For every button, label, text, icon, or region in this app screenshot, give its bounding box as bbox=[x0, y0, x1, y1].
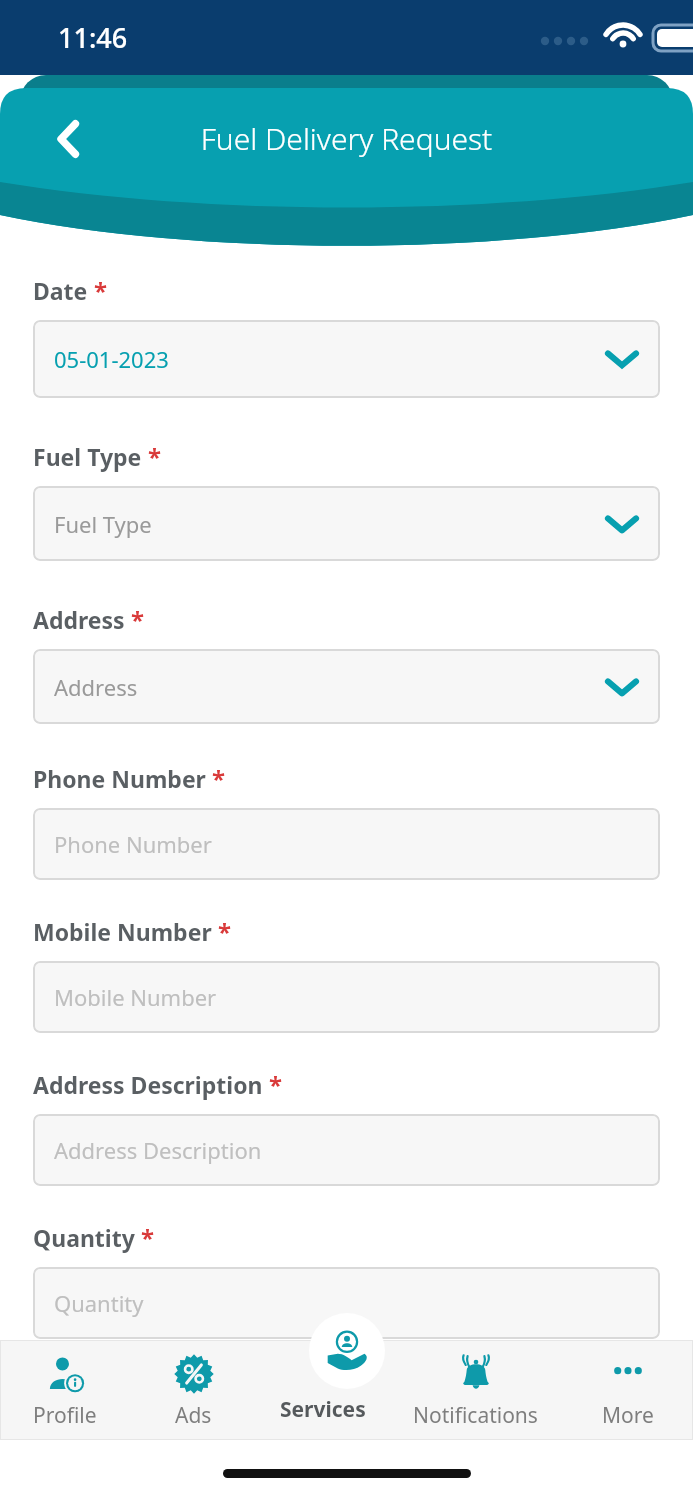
staticText: Ads bbox=[175, 1401, 212, 1430]
button[interactable]: Services bbox=[309, 1313, 385, 1389]
button[interactable]: Fuel Type bbox=[33, 486, 660, 561]
button[interactable]: Phone Number bbox=[33, 808, 660, 880]
button[interactable]: Address Description bbox=[33, 1114, 660, 1186]
staticText: Date bbox=[33, 275, 88, 306]
staticText: Profile bbox=[33, 1401, 97, 1430]
staticText: * bbox=[148, 440, 162, 473]
staticText: Address Description bbox=[33, 1069, 263, 1100]
staticText: Phone Number bbox=[33, 763, 206, 794]
staticText: Fuel Delivery Request bbox=[0, 118, 693, 159]
button[interactable]: Notifications bbox=[388, 1340, 563, 1440]
staticText: Address bbox=[54, 672, 606, 702]
staticText: Address bbox=[33, 604, 125, 635]
staticText: Services bbox=[280, 1395, 366, 1424]
staticText: More bbox=[602, 1401, 654, 1430]
staticText: Phone Number bbox=[54, 829, 638, 859]
button[interactable]: 05-01-2023 bbox=[33, 320, 660, 398]
button[interactable]: Mobile Number bbox=[33, 961, 660, 1033]
staticText: * bbox=[218, 915, 232, 948]
staticText: Fuel Type bbox=[54, 509, 606, 539]
staticText: * bbox=[94, 274, 108, 307]
button[interactable]: Ads bbox=[129, 1340, 258, 1440]
staticText: * bbox=[141, 1221, 155, 1254]
staticText: * bbox=[269, 1068, 283, 1101]
staticText: Address Description bbox=[54, 1135, 638, 1165]
staticText: Mobile Number bbox=[33, 916, 212, 947]
staticText: Fuel Type bbox=[33, 441, 142, 472]
button[interactable]: Quantity bbox=[33, 1267, 660, 1339]
button[interactable]: Back bbox=[38, 108, 100, 170]
staticText: 05-01-2023 bbox=[54, 344, 606, 374]
staticText: * bbox=[131, 603, 145, 636]
button[interactable]: Services bbox=[258, 1340, 388, 1440]
staticText: Mobile Number bbox=[54, 982, 638, 1012]
button[interactable]: Address bbox=[33, 649, 660, 724]
staticText: 11:46 bbox=[58, 19, 128, 56]
staticText: Notifications bbox=[413, 1401, 538, 1430]
staticText: Quantity bbox=[33, 1222, 135, 1253]
staticText: * bbox=[212, 762, 226, 795]
staticText: Quantity bbox=[54, 1288, 638, 1318]
button[interactable]: Profile bbox=[0, 1340, 129, 1440]
button[interactable]: More bbox=[563, 1340, 693, 1440]
